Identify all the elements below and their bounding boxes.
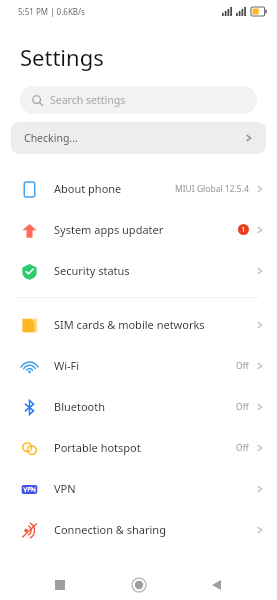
button[interactable]: Connection & sharing [0,509,277,550]
button[interactable]: Portable hotspot [0,427,277,468]
staticText: Connection & sharing [54,522,256,537]
staticText: Wi-Fi [54,358,236,373]
staticText: MIUI Global 12.5.4 [175,183,249,195]
staticText: System apps updater [54,222,238,237]
button[interactable]: System apps updater [0,209,277,250]
staticText: Bluetooth [54,399,236,414]
button[interactable]: SIM cards & mobile networks [0,304,277,345]
button[interactable]: Wi-Fi [0,345,277,386]
button[interactable]: Back [199,570,235,600]
staticText: About phone [54,181,175,196]
button[interactable]: Home [121,570,157,600]
staticText: Off [236,442,249,454]
staticText: SIM cards & mobile networks [54,317,256,332]
staticText: Search settings [50,93,126,107]
button[interactable]: Checking... [11,122,266,154]
staticText: Checking... [24,131,245,145]
staticText: Off [236,401,249,413]
staticText: 1 [241,225,246,235]
staticText: Off [236,360,249,372]
button[interactable]: Recents [42,570,78,600]
staticText: Settings [20,42,104,72]
staticText: Portable hotspot [54,440,236,455]
staticText: VPN [54,481,256,496]
button[interactable]: Security status [0,250,277,291]
button[interactable]: VPN [0,468,277,509]
staticText: Security status [54,263,256,278]
button[interactable]: Bluetooth [0,386,277,427]
button[interactable]: Search settings [20,86,257,114]
button[interactable]: About phone [0,168,277,209]
staticText: 5:51 PM | 0.6KB/s [18,6,85,17]
